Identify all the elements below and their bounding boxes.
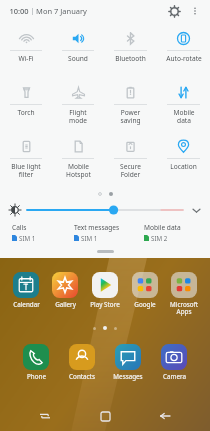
staticText: Blue light filter [11, 162, 41, 179]
staticText: Mobile data [173, 108, 195, 125]
staticText: Camera [163, 372, 186, 381]
button[interactable]: Calls [12, 223, 74, 247]
button[interactable]: Torch [0, 80, 52, 134]
button[interactable]: Phone [18, 344, 54, 381]
button[interactable]: More options [187, 3, 203, 19]
button[interactable]: Text messages [74, 223, 144, 247]
staticText: Google [134, 300, 156, 309]
staticText: Sound [68, 54, 88, 63]
button[interactable]: Settings [165, 2, 183, 20]
staticText: Secure Folder [120, 162, 141, 179]
button[interactable]: Play Store [87, 272, 123, 309]
staticText: Mobile Hotspot [66, 162, 91, 179]
button[interactable]: Flight mode [52, 80, 104, 134]
staticText: Mobile data [144, 223, 181, 232]
staticText: Auto-rotate [166, 54, 202, 63]
button[interactable]: Power saving [104, 80, 157, 134]
button[interactable]: Sound [52, 26, 104, 80]
staticText: Location [170, 162, 197, 171]
button[interactable]: Mobile data [157, 80, 210, 134]
staticText: Text messages [74, 223, 120, 232]
button[interactable]: Wi-Fi [0, 26, 52, 80]
staticText: Calendar [13, 300, 40, 309]
staticText: Phone [27, 372, 46, 381]
staticText: Bluetooth [115, 54, 146, 63]
button[interactable]: Google [127, 272, 163, 309]
button[interactable]: Bluetooth [104, 26, 157, 80]
staticText: Gallery [55, 300, 76, 309]
staticText: Wi-Fi [18, 54, 34, 63]
staticText: Flight mode [69, 108, 87, 125]
staticText: SIM 1 [19, 234, 36, 242]
button[interactable]: Recents [30, 401, 60, 431]
button[interactable]: Back [150, 401, 180, 431]
button[interactable]: Mobile Hotspot [52, 134, 104, 188]
button[interactable]: Microsoft Apps [166, 272, 202, 316]
button[interactable]: Mobile data [144, 223, 202, 247]
staticText: Torch [17, 108, 35, 117]
staticText: Contacts [69, 372, 95, 381]
staticText: Microsoft Apps [170, 300, 198, 316]
button[interactable]: Calendar [8, 272, 44, 309]
button[interactable]: Messages [110, 344, 146, 381]
staticText: Calls [12, 223, 27, 232]
button[interactable]: Location [157, 134, 210, 188]
button[interactable]: Brightness [27, 204, 183, 216]
button[interactable]: Secure Folder [104, 134, 157, 188]
staticText: 10:00 [9, 6, 29, 16]
staticText: Power saving [120, 108, 141, 125]
staticText: Play Store [90, 300, 120, 309]
staticText: SIM 1 [81, 234, 98, 242]
button[interactable]: Auto-rotate [157, 26, 210, 80]
button[interactable]: Home [90, 401, 120, 431]
staticText: Messages [113, 372, 143, 381]
button[interactable]: Camera [156, 344, 192, 381]
button[interactable]: Expand brightness settings [189, 203, 203, 217]
staticText: Mon 7 January [36, 6, 87, 16]
button[interactable]: Contacts [64, 344, 100, 381]
button[interactable]: Blue light filter [0, 134, 52, 188]
staticText: SIM 2 [151, 234, 168, 242]
button[interactable]: Gallery [47, 272, 83, 309]
